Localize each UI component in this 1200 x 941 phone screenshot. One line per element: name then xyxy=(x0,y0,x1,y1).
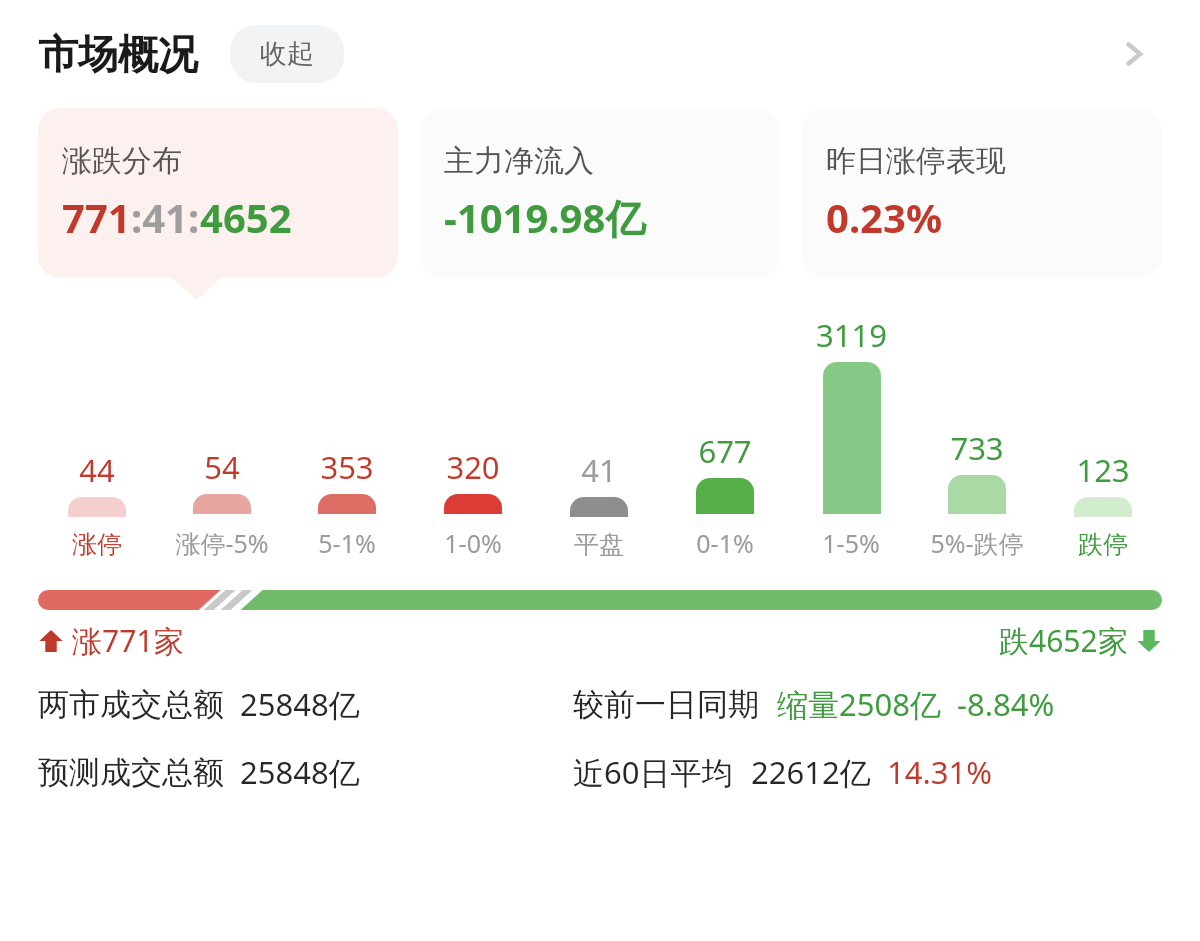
staticText: 涨停-5% xyxy=(175,526,269,560)
staticText: 5-1% xyxy=(318,526,376,560)
staticText: 1-0% xyxy=(444,526,502,560)
button[interactable]: 收起 xyxy=(230,25,344,83)
staticText: 771 xyxy=(62,190,131,244)
button[interactable]: 更多 xyxy=(1106,26,1162,82)
staticText: 123 xyxy=(1076,449,1130,491)
button[interactable]: 昨日涨停表现 xyxy=(802,108,1162,278)
staticText: 涨771家 xyxy=(72,620,184,661)
staticText: :41: xyxy=(131,190,200,244)
staticText: 4652 xyxy=(200,190,292,244)
staticText: 733 xyxy=(950,427,1004,469)
staticText: 市场概况 xyxy=(38,29,198,79)
staticText: -1019.98亿 xyxy=(444,190,646,245)
staticText: 353 xyxy=(320,446,374,488)
staticText: 主力净流入 xyxy=(444,142,594,180)
staticText: 22612亿 xyxy=(751,751,871,793)
staticText: 缩量2508亿 xyxy=(777,683,941,725)
staticText: 跌停 xyxy=(1078,529,1128,560)
staticText: 近60日平均 xyxy=(573,751,733,793)
staticText: 5%-跌停 xyxy=(930,526,1024,560)
staticText: 54 xyxy=(204,446,240,488)
staticText: 昨日涨停表现 xyxy=(826,142,1006,180)
staticText: 0-1% xyxy=(696,526,754,560)
button[interactable]: 主力净流入 xyxy=(420,108,780,278)
staticText: 0.23% xyxy=(826,190,942,244)
staticText: 较前一日同期 xyxy=(573,685,759,724)
staticText: 收起 xyxy=(260,37,314,71)
staticText: -8.84% xyxy=(957,683,1055,725)
staticText: 两市成交总额 xyxy=(38,685,224,724)
staticText: 44 xyxy=(79,449,115,491)
staticText: 1-5% xyxy=(822,526,880,560)
staticText: 3119 xyxy=(816,314,887,356)
staticText: 跌4652家 xyxy=(999,620,1128,661)
staticText: 25848亿 xyxy=(240,683,360,725)
staticText: 320 xyxy=(446,446,500,488)
staticText: 预测成交总额 xyxy=(38,753,224,792)
staticText: 平盘 xyxy=(574,529,624,560)
staticText: 677 xyxy=(698,430,752,472)
button[interactable]: 涨跌分布 xyxy=(38,108,398,278)
staticText: 14.31% xyxy=(887,751,992,793)
staticText: 涨停 xyxy=(72,529,122,560)
staticText: 涨跌分布 xyxy=(62,142,182,180)
staticText: 25848亿 xyxy=(240,751,360,793)
staticText: 41 xyxy=(581,449,617,491)
